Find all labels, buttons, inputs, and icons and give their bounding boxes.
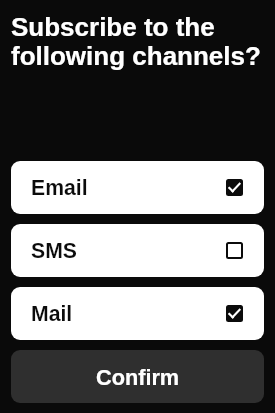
other: Mail, checked (226, 305, 243, 322)
staticText: Mail (31, 302, 73, 326)
staticText: SMS (31, 239, 77, 263)
staticText: Email (31, 176, 88, 200)
other: Email, checked (226, 179, 243, 196)
button[interactable]: SMS (11, 224, 264, 277)
staticText: Confirm (96, 365, 180, 389)
button[interactable]: Email (11, 161, 264, 214)
other: SMS, unchecked (226, 242, 243, 259)
button[interactable]: Mail (11, 287, 264, 340)
staticText: Subscribe to the following channels? (11, 12, 269, 71)
button[interactable]: Confirm (11, 350, 264, 403)
